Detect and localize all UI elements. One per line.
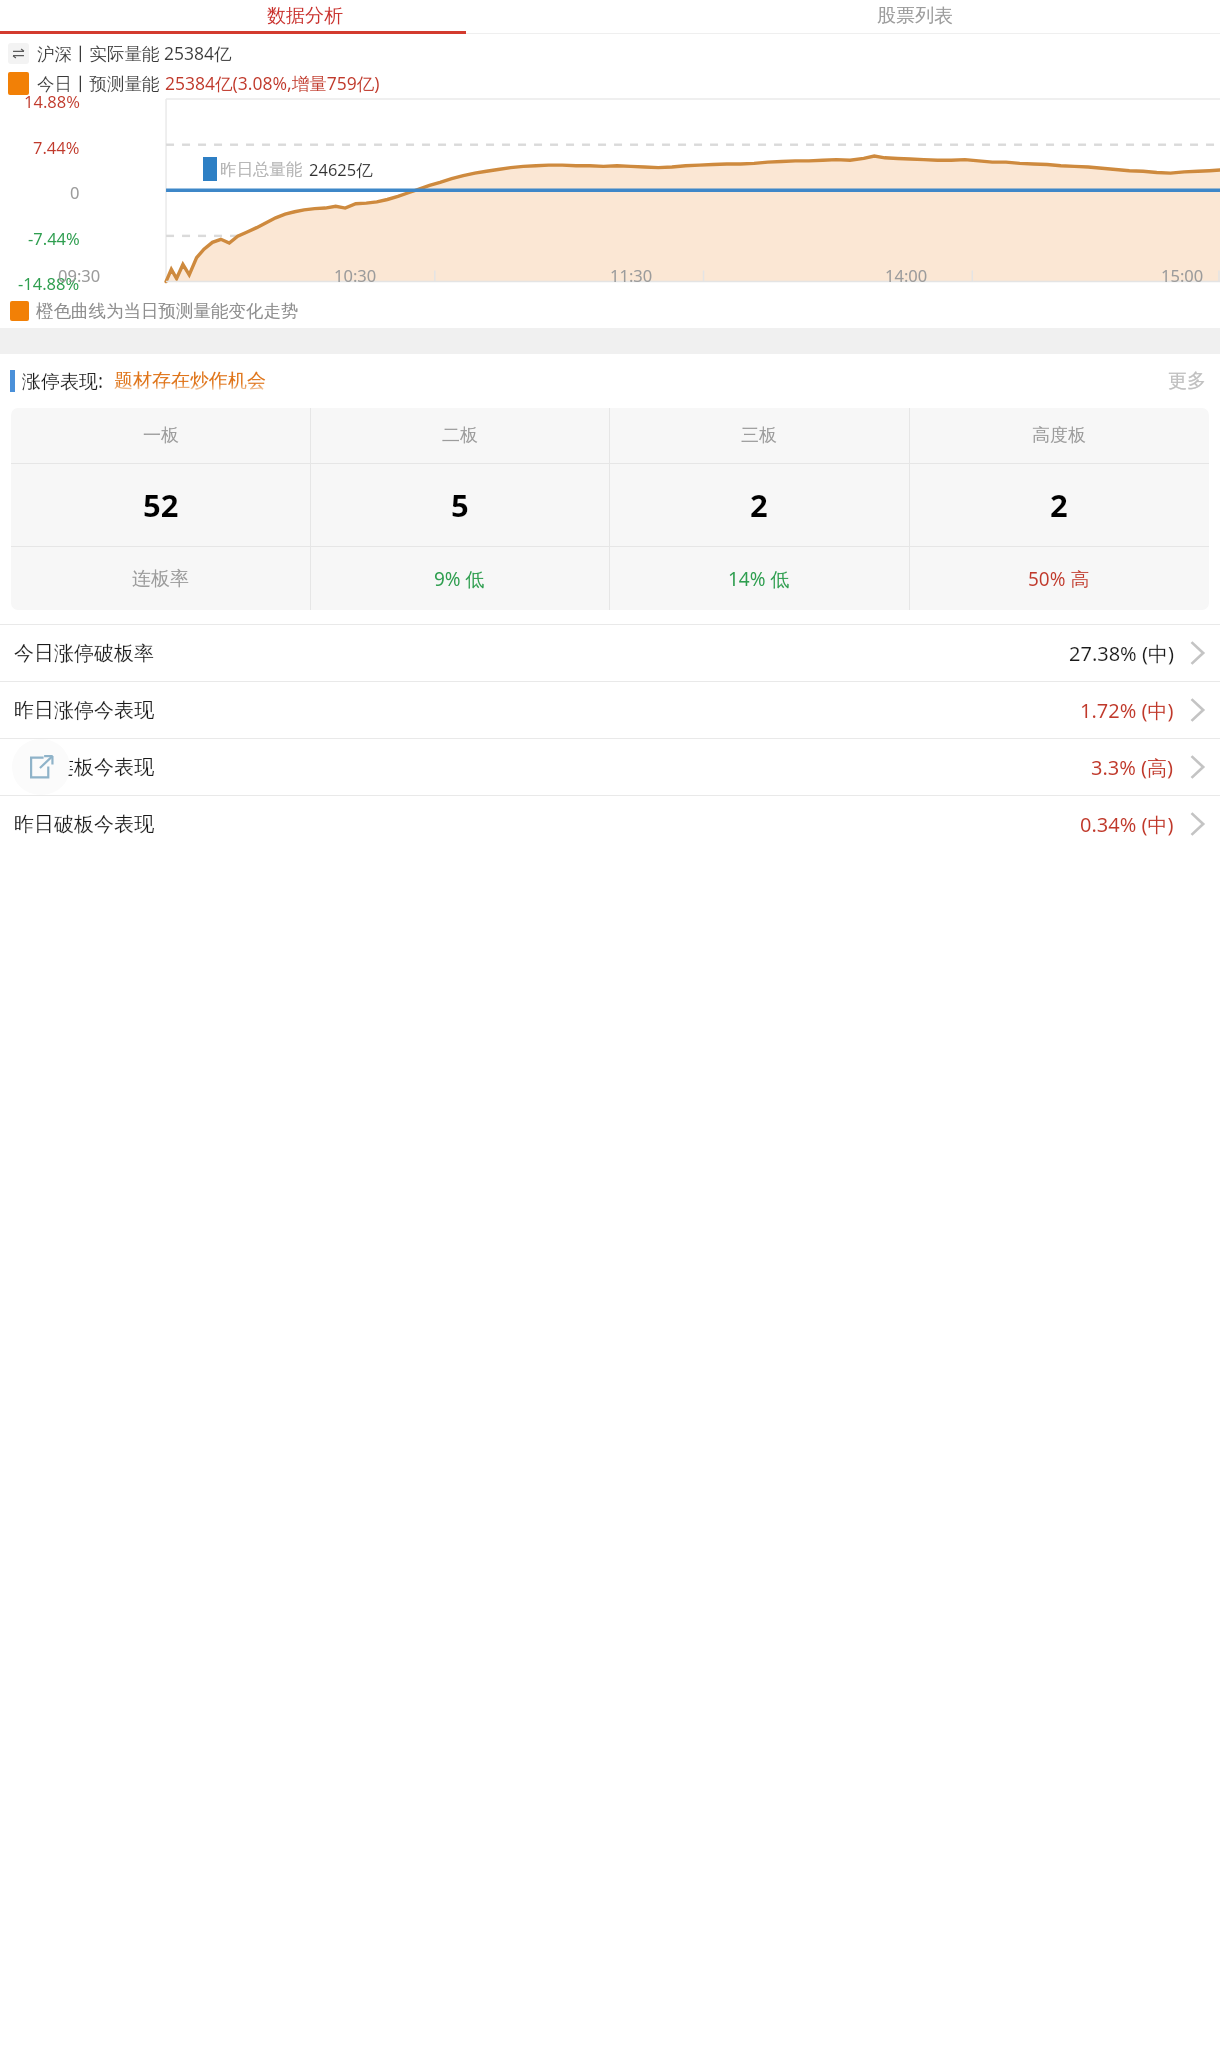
staticText: 2 [1050, 484, 1068, 526]
staticText: 高度板 [1032, 424, 1086, 447]
staticText: 27.38% (中) [1069, 640, 1174, 667]
staticText: 14.88% [24, 90, 80, 112]
button[interactable]: 昨日破板今表现 [0, 796, 1220, 852]
staticText: 今日丨预测量能 [37, 71, 165, 95]
staticText: 10:30 [334, 264, 377, 286]
button[interactable]: 更多 [1164, 365, 1210, 397]
staticText: 二板 [442, 424, 478, 447]
staticText: 沪深丨实际量能 25384亿 [37, 41, 232, 65]
staticText: -7.44% [28, 227, 80, 249]
staticText: 昨日总量能 [220, 159, 303, 180]
button[interactable]: 昨日连板今表现 [0, 739, 1220, 795]
staticText: 14:00 [885, 264, 928, 286]
staticText: 24625亿 [309, 158, 373, 181]
staticText: 一板 [143, 424, 179, 447]
staticText: 昨日涨停今表现 [14, 698, 154, 723]
staticText: 2 [750, 484, 768, 526]
staticText: 5 [451, 484, 469, 526]
staticText: 9% 低 [434, 566, 485, 592]
staticText: 52 [143, 484, 179, 526]
staticText: 题材存在炒作机会 [114, 369, 266, 393]
button[interactable]: 数据分析 [0, 0, 610, 31]
staticText: 14% 低 [728, 566, 790, 592]
staticText: 50% 高 [1028, 566, 1090, 592]
staticText: 更多 [1168, 369, 1206, 393]
staticText: 昨日连板今表现 [14, 755, 154, 780]
staticText: 涨停表现: [22, 368, 104, 394]
staticText: 7.44% [33, 136, 80, 158]
staticText: 15:00 [1161, 264, 1204, 286]
button[interactable]: 今日涨停破板率 [0, 625, 1220, 681]
staticText: 1.72% (中) [1080, 697, 1174, 724]
staticText: 09:30 [58, 264, 101, 286]
button[interactable]: 昨日涨停今表现 [0, 682, 1220, 738]
staticText: 25384亿(3.08%,增量759亿) [165, 71, 380, 95]
staticText: -14.88% [18, 272, 80, 294]
staticText: 橙色曲线为当日预测量能变化走势 [36, 300, 299, 322]
staticText: 0.34% (中) [1080, 811, 1174, 838]
button[interactable]: 分享 [12, 739, 70, 795]
staticText: 3.3% (高) [1091, 754, 1174, 781]
staticText: 0 [70, 181, 80, 203]
staticText: 今日涨停破板率 [14, 641, 154, 666]
staticText: 11:30 [610, 264, 653, 286]
staticText: 昨日破板今表现 [14, 812, 154, 837]
staticText: 股票列表 [877, 4, 953, 28]
staticText: 连板率 [132, 567, 189, 591]
staticText: 数据分析 [267, 4, 343, 28]
button[interactable]: 切换指数 [8, 43, 29, 64]
staticText: 三板 [741, 424, 777, 447]
button[interactable]: 股票列表 [610, 0, 1220, 31]
